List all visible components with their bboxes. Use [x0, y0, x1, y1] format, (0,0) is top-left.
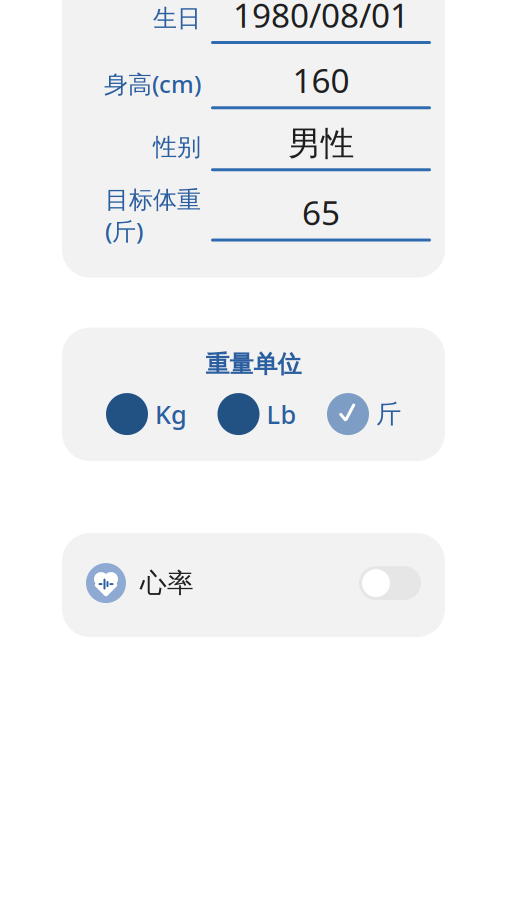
staticText: Kg	[155, 397, 187, 431]
staticText: 生日	[153, 4, 201, 33]
staticText: Lb	[266, 397, 296, 431]
button[interactable]: 身高(cm)	[62, 51, 445, 116]
staticText: 心率	[140, 567, 194, 599]
staticText: 目标体重(斤)	[105, 185, 201, 247]
staticText: 男性	[288, 123, 354, 164]
staticText: 1980/08/01	[233, 0, 409, 37]
staticText: 斤	[376, 398, 401, 430]
button[interactable]: 生日	[62, 0, 445, 51]
button[interactable]: 斤	[327, 393, 401, 435]
staticText: 重量单位	[205, 350, 301, 379]
button[interactable]: 心率	[62, 533, 445, 637]
staticText: 性别	[153, 132, 201, 162]
button[interactable]: Kg	[106, 393, 187, 435]
staticText: 160	[292, 58, 349, 102]
staticText: 身高(cm)	[104, 68, 201, 100]
button[interactable]: 性别	[62, 116, 445, 178]
button[interactable]: Lb	[217, 393, 296, 435]
button[interactable]: 目标体重(斤)	[62, 178, 445, 254]
staticText: 65	[302, 190, 340, 235]
